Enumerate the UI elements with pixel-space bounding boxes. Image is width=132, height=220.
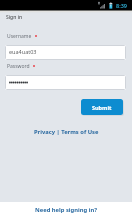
staticText: Sign in	[6, 14, 23, 21]
staticText: Password	[7, 63, 30, 70]
button[interactable]: Username field	[5, 45, 126, 60]
staticText: 8:39	[116, 2, 127, 9]
other: Signal strength	[98, 1, 105, 9]
button[interactable]: Password field	[5, 75, 126, 90]
button[interactable]: Privacy | Terms of Use	[32, 128, 101, 136]
other: Battery	[109, 2, 114, 9]
other: Password entered	[9, 81, 28, 84]
staticText: Need help signing in?	[35, 206, 97, 214]
button[interactable]: Need help signing in?	[0, 202, 132, 220]
staticText: Username	[7, 33, 32, 40]
button[interactable]: Submit	[81, 99, 123, 115]
staticText: eua4uat03	[9, 48, 37, 55]
staticText: Submit	[92, 104, 112, 111]
